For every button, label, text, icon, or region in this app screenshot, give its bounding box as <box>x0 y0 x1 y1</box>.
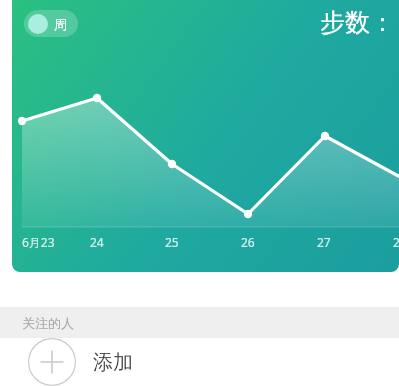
other: 添加 <box>28 338 76 386</box>
staticText: 6月23 <box>22 234 55 250</box>
button[interactable]: 周 <box>24 10 78 37</box>
staticText: 24 <box>90 234 104 250</box>
staticText: 2 <box>393 234 399 250</box>
button[interactable]: 添加 <box>0 338 399 386</box>
staticText: 25 <box>165 234 179 250</box>
button[interactable]: 周 <box>12 0 399 272</box>
staticText: 27 <box>317 234 331 250</box>
staticText: 周 <box>54 16 67 32</box>
staticText: 26 <box>241 234 255 250</box>
staticText: 关注的人 <box>22 315 74 331</box>
staticText: 添加 <box>93 350 133 375</box>
staticText: 步数： <box>320 7 395 38</box>
